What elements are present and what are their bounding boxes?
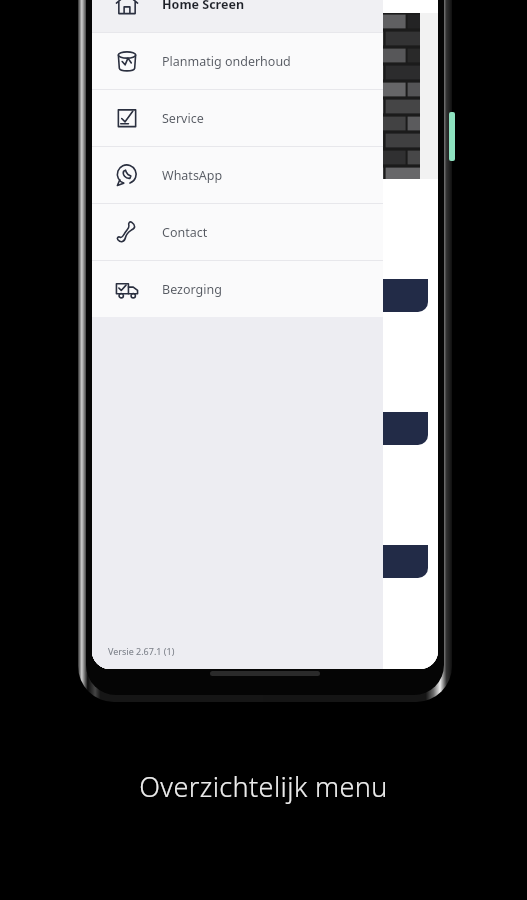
button[interactable]: Contact (92, 204, 383, 260)
staticText: Bezorging (162, 281, 222, 298)
button[interactable]: Home Screen (92, 0, 383, 32)
staticText: Planmatig onderhoud (162, 53, 291, 70)
staticText: WhatsApp (162, 167, 223, 184)
staticText: Service (162, 110, 204, 127)
button[interactable] (102, 453, 428, 578)
staticText: Overzichtelijk menu (0, 768, 527, 805)
staticText: Versie 2.67.1 (1) (108, 645, 175, 657)
button[interactable]: Bezorging (92, 261, 383, 317)
button[interactable]: Planmatig onderhoud (92, 33, 383, 89)
staticText: Home Screen (162, 0, 245, 13)
button[interactable] (102, 187, 428, 312)
staticText: Contact (162, 224, 208, 241)
button[interactable] (102, 320, 428, 445)
button[interactable]: WhatsApp (92, 147, 383, 203)
button[interactable]: Service (92, 90, 383, 146)
